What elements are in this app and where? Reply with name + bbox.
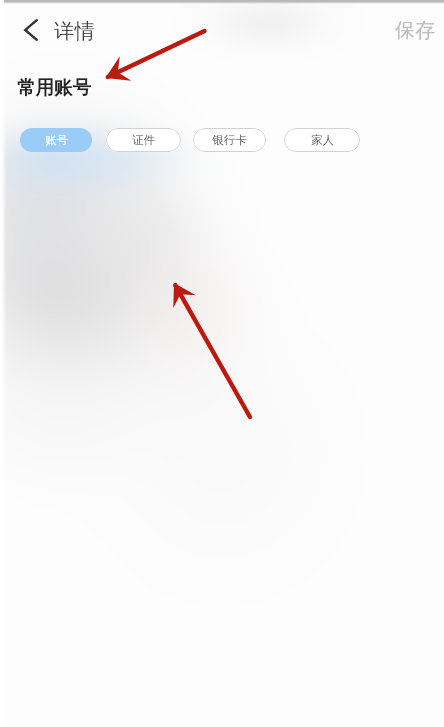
- staticText: 银行卡: [212, 133, 247, 147]
- button[interactable]: 银行卡: [193, 128, 266, 152]
- staticText: 详情: [54, 18, 95, 44]
- button[interactable]: 保存: [387, 12, 443, 48]
- button[interactable]: Back: [12, 14, 50, 46]
- button[interactable]: 账号: [20, 128, 92, 152]
- button[interactable]: 详情: [54, 18, 95, 44]
- staticText: 家人: [311, 133, 334, 147]
- button[interactable]: 证件: [106, 128, 181, 152]
- button[interactable]: 家人: [284, 128, 360, 152]
- staticText: 常用账号: [17, 76, 91, 99]
- staticText: 保存: [395, 18, 435, 43]
- staticText: 账号: [45, 133, 68, 147]
- staticText: 证件: [132, 133, 155, 147]
